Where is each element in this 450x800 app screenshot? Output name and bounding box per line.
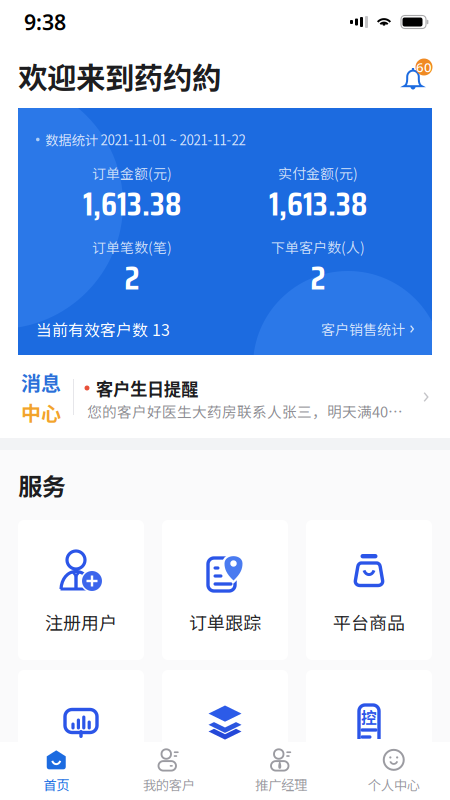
button[interactable]: 首页 (0, 742, 112, 800)
staticText: 销售统计 (45, 759, 117, 785)
button[interactable]: 商品分类 (162, 670, 288, 800)
staticText: 实付金额(元) (278, 163, 358, 183)
staticText: 9:38 (24, 8, 66, 36)
button[interactable]: 控 (306, 670, 432, 800)
button[interactable]: 个人中心 (337, 742, 450, 800)
staticText: 1,613.38 (269, 178, 367, 230)
button[interactable]: 通知 (396, 58, 432, 94)
button[interactable]: 销售统计 (18, 670, 144, 800)
staticText: 个人中心 (368, 775, 420, 794)
button[interactable]: 客户销售统计 (321, 319, 414, 339)
staticText: 注册用户 (45, 609, 117, 635)
button[interactable]: 消息 (0, 356, 450, 438)
staticText: 消息 (21, 367, 61, 396)
button[interactable]: 推广经理 (225, 742, 337, 800)
staticText: 欢迎来到药约約 (18, 55, 221, 97)
staticText: 控 (361, 705, 377, 729)
staticText: 客户生日提醒 (96, 375, 198, 401)
staticText: 推广经理 (255, 775, 307, 794)
staticText: 数据统计 2021-11-01 ~ 2021-11-22 (46, 130, 246, 149)
button[interactable]: 我的客户 (112, 742, 225, 800)
staticText: 订单跟踪 (189, 609, 261, 635)
staticText: 平台商品 (333, 609, 405, 635)
staticText: 订单笔数(笔) (92, 237, 172, 257)
staticText: 中心 (21, 397, 61, 426)
staticText: 1,613.38 (83, 178, 181, 230)
staticText: 我的客户 (143, 775, 195, 794)
staticText: 当前有效客户数 13 (36, 317, 170, 341)
staticText: 控销商品 (333, 759, 405, 785)
staticText: 2 (310, 252, 325, 304)
staticText: 商品分类 (189, 759, 261, 785)
staticText: 60 (416, 58, 432, 76)
staticText: 订单金额(元) (92, 163, 172, 183)
staticText: 服务 (18, 468, 66, 502)
button[interactable]: 注册用户 (18, 520, 144, 660)
staticText: 2 (124, 252, 139, 304)
staticText: 您的客户好医生大药房联系人张三，明天满40岁... (87, 400, 409, 422)
staticText: 首页 (43, 775, 69, 794)
button[interactable]: 平台商品 (306, 520, 432, 660)
staticText: 客户销售统计 (321, 319, 405, 339)
button[interactable]: 订单跟踪 (162, 520, 288, 660)
staticText: 下单客户数(人) (271, 237, 365, 257)
